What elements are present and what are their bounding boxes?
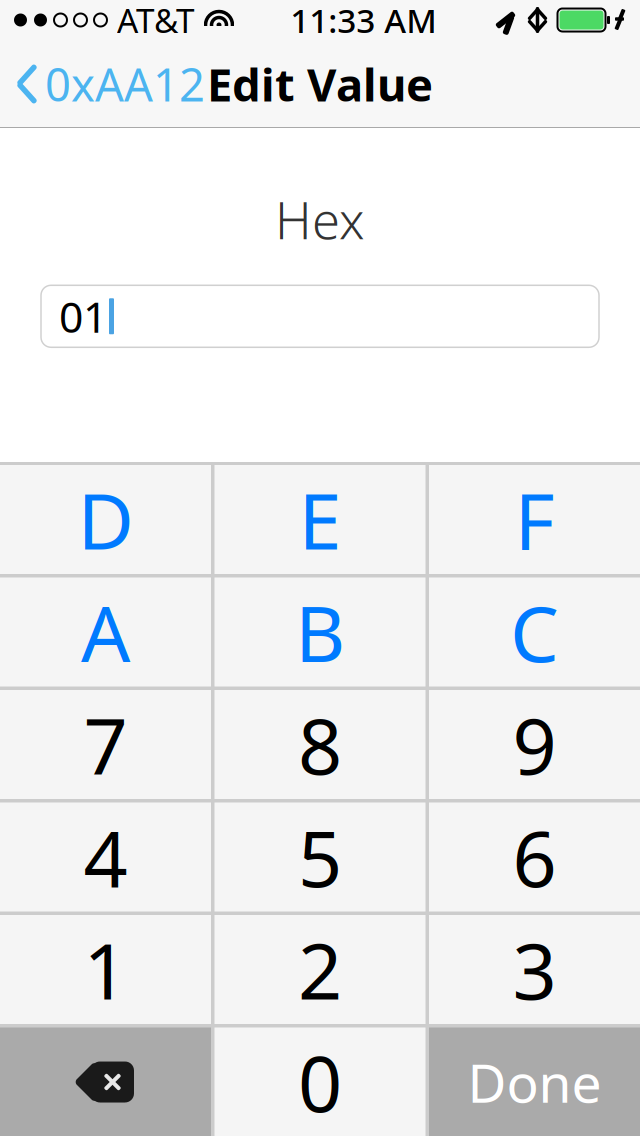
button[interactable]: Delete: [0, 1027, 211, 1136]
staticText: B: [295, 581, 345, 683]
staticText: Hex: [275, 186, 365, 253]
button[interactable]: 0: [214, 1027, 425, 1136]
button[interactable]: E: [214, 465, 425, 574]
staticText: 6: [512, 806, 556, 908]
staticText: F: [514, 468, 554, 571]
staticText: 1: [83, 918, 127, 1021]
staticText: AT&T: [117, 0, 195, 42]
staticText: Done: [467, 1047, 601, 1117]
staticText: 01: [59, 288, 107, 345]
staticText: 0: [298, 1031, 342, 1133]
button[interactable]: 3: [429, 915, 640, 1024]
button[interactable]: 0xAA12: [0, 48, 221, 120]
button[interactable]: 5: [214, 802, 425, 911]
staticText: 9: [512, 693, 556, 796]
button[interactable]: Done: [429, 1027, 640, 1136]
staticText: 8: [298, 693, 342, 796]
button[interactable]: B: [214, 577, 425, 686]
button[interactable]: 2: [214, 915, 425, 1024]
button[interactable]: C: [429, 577, 640, 686]
staticText: 3: [512, 918, 556, 1021]
staticText: A: [81, 581, 130, 683]
staticText: C: [510, 581, 559, 683]
staticText: 0xAA12: [45, 54, 205, 114]
staticText: Edit Value: [207, 54, 433, 114]
staticText: 5: [298, 806, 342, 908]
button[interactable]: 6: [429, 802, 640, 911]
staticText: E: [298, 468, 341, 571]
staticText: D: [77, 468, 133, 571]
button[interactable]: F: [429, 465, 640, 574]
button[interactable]: 9: [429, 690, 640, 799]
staticText: 11:33 AM: [290, 0, 437, 42]
staticText: 4: [83, 806, 127, 908]
staticText: 2: [298, 918, 342, 1021]
button[interactable]: A: [0, 577, 211, 686]
staticText: 7: [83, 693, 127, 796]
button[interactable]: 4: [0, 802, 211, 911]
button[interactable]: 1: [0, 915, 211, 1024]
button[interactable]: 7: [0, 690, 211, 799]
button[interactable]: 8: [214, 690, 425, 799]
button[interactable]: D: [0, 465, 211, 574]
